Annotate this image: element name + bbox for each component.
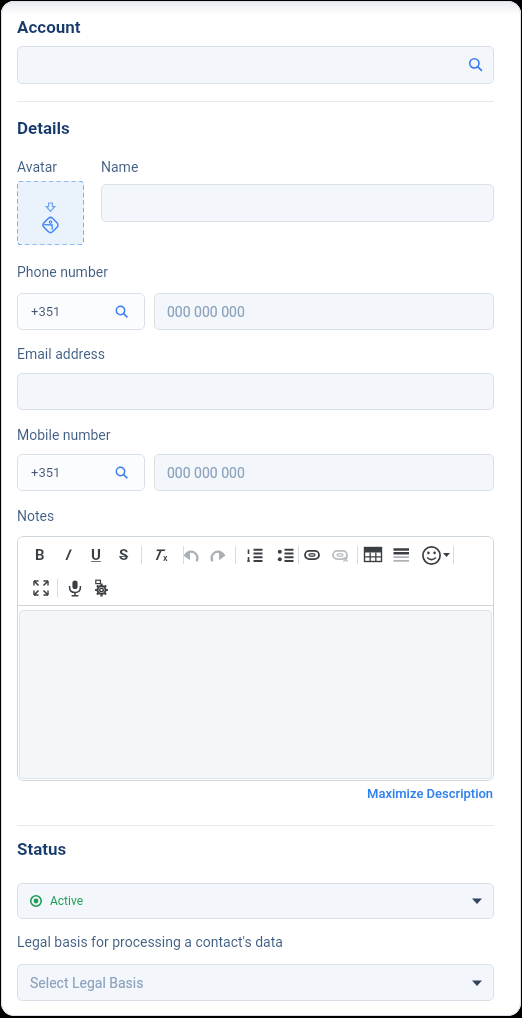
button[interactable]: T [150, 545, 170, 565]
staticText: 000 000 000 [167, 465, 245, 481]
staticText: Active [50, 894, 84, 908]
staticText: U [91, 546, 101, 564]
button[interactable] [91, 578, 111, 598]
button[interactable]: Active [17, 883, 494, 919]
staticText: +351 [31, 304, 61, 319]
button[interactable] [181, 545, 201, 565]
button[interactable] [363, 545, 383, 565]
button[interactable] [207, 545, 227, 565]
staticText: T [153, 546, 163, 564]
button[interactable]: 000 000 000 [154, 293, 494, 330]
staticText: Phone number [17, 264, 108, 280]
button[interactable]: +351 [17, 454, 145, 491]
staticText: Name [101, 159, 139, 175]
button[interactable]: Maximize Description [367, 786, 494, 801]
staticText: Details [17, 118, 70, 138]
button[interactable]: Select Legal Basis [17, 964, 494, 1001]
button[interactable]: 000 000 000 [154, 454, 494, 491]
staticText: 000 000 000 [167, 304, 245, 320]
button[interactable] [31, 578, 51, 598]
staticText: Select Legal Basis [30, 975, 144, 991]
staticText: Legal basis for processing a contact's d… [17, 934, 283, 950]
button[interactable] [101, 184, 494, 222]
staticText: Account [17, 17, 81, 37]
button[interactable] [17, 46, 494, 84]
button[interactable] [17, 373, 494, 410]
staticText: Email address [17, 346, 106, 362]
button[interactable]: B [30, 545, 50, 565]
staticText: Avatar [17, 159, 58, 175]
staticText: I [65, 546, 70, 564]
button[interactable] [421, 545, 441, 565]
button[interactable] [17, 181, 84, 245]
button[interactable] [330, 545, 350, 565]
staticText: S [119, 546, 129, 564]
button[interactable] [275, 545, 295, 565]
staticText: x [163, 553, 168, 564]
button[interactable] [391, 545, 411, 565]
button[interactable]: S [114, 545, 134, 565]
button[interactable] [244, 545, 264, 565]
staticText: Notes [17, 508, 55, 524]
staticText: +351 [31, 465, 61, 480]
staticText: B [35, 546, 45, 564]
button[interactable]: +351 [17, 293, 145, 330]
button[interactable]: I [57, 545, 77, 565]
button[interactable] [65, 578, 85, 598]
button[interactable]: U [86, 545, 106, 565]
staticText: Status [17, 839, 67, 859]
button[interactable] [302, 545, 322, 565]
staticText: Mobile number [17, 427, 111, 443]
